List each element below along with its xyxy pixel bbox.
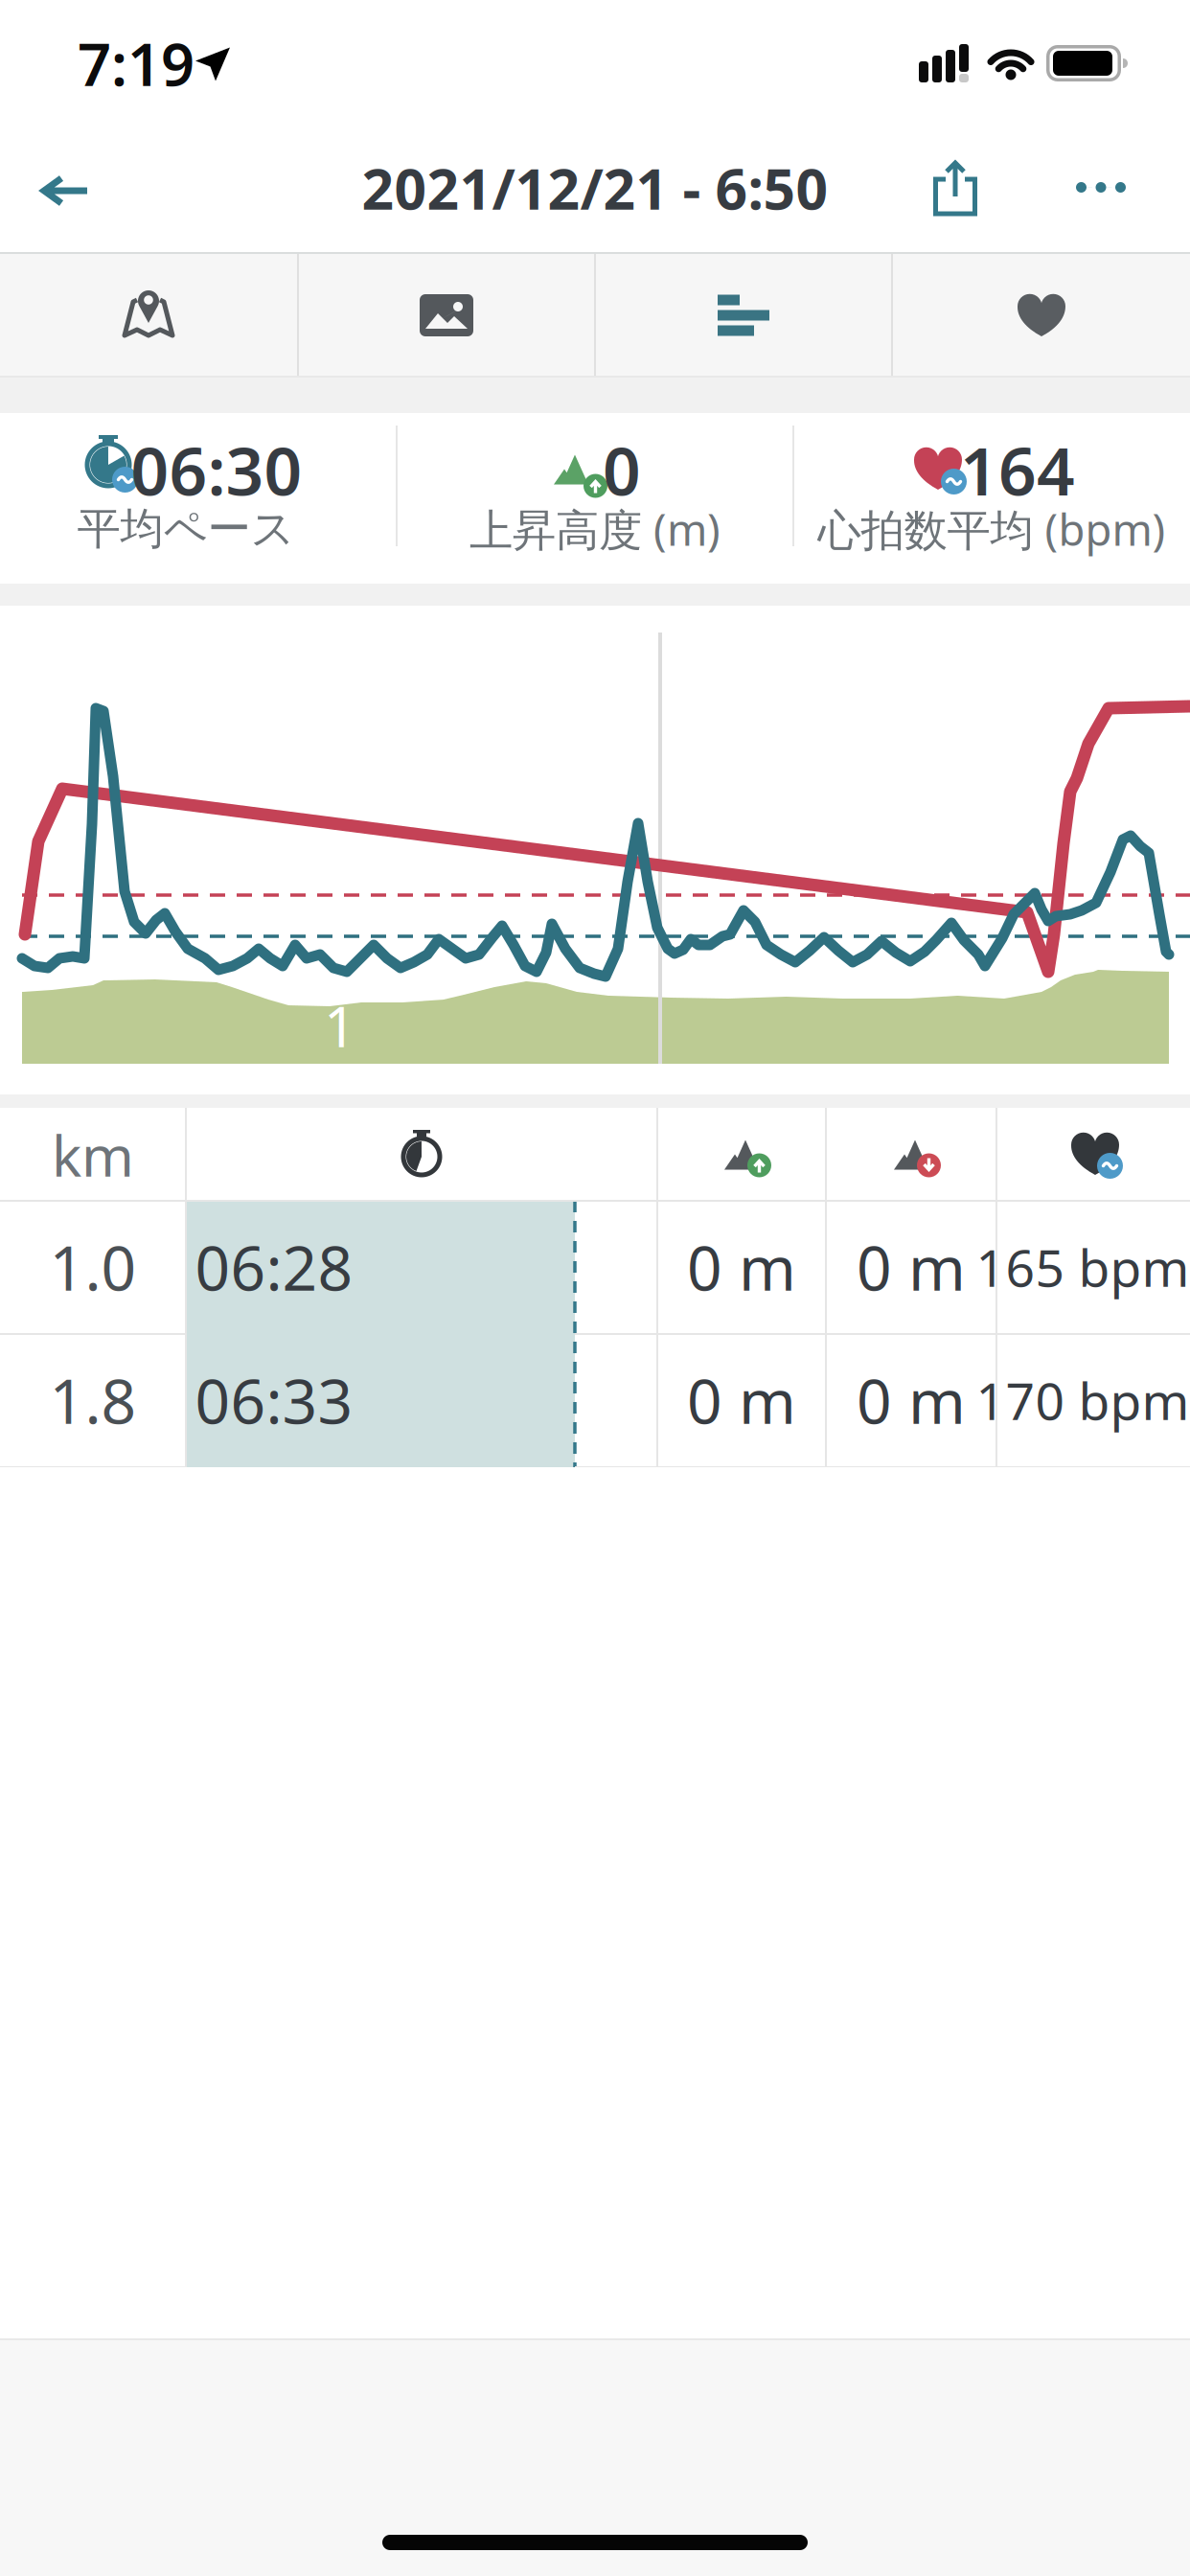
staticText: 上昇高度 (m) [469, 500, 721, 558]
staticText: 1 [324, 988, 356, 1063]
staticText: 1.0 [49, 1226, 137, 1308]
staticText: km [52, 1117, 134, 1192]
staticText: 7:19 [78, 24, 195, 102]
button[interactable]: Statistics [595, 254, 892, 376]
button[interactable]: Back [17, 148, 113, 234]
staticText: 0 [603, 425, 641, 514]
staticText: 2021/12/21 - 6:50 [362, 150, 828, 225]
staticText: 170 bpm [976, 1366, 1190, 1434]
staticText: 0 m [857, 1359, 966, 1441]
button[interactable]: Map [0, 254, 297, 376]
button[interactable]: Photos [298, 254, 595, 376]
staticText: 0 m [687, 1359, 796, 1441]
button[interactable]: Heart rate [893, 254, 1190, 376]
staticText: 平均ペース [77, 502, 295, 556]
staticText: 心拍数平均 (bpm) [818, 500, 1166, 558]
button[interactable]: More options [1058, 154, 1144, 221]
staticText: 06:30 [131, 425, 302, 514]
staticText: 06:33 [195, 1359, 353, 1441]
staticText: 0 m [857, 1226, 966, 1308]
staticText: 06:28 [195, 1226, 353, 1308]
staticText: 0 m [687, 1226, 796, 1308]
button[interactable]: Share [912, 145, 998, 231]
staticText: 165 bpm [976, 1233, 1190, 1301]
staticText: 164 [960, 425, 1075, 514]
staticText: 1.8 [49, 1359, 137, 1441]
